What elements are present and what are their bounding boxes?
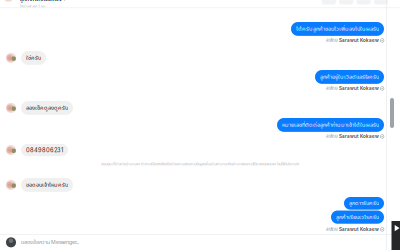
button[interactable]: ขอดอบเจ้าไหมครับ xyxy=(21,178,73,192)
staticText: ส่งโดย xyxy=(326,37,339,44)
staticText: Sarawut Kokaew xyxy=(339,38,379,43)
staticText: Sarawut Kokaew xyxy=(339,134,379,139)
staticText: ส่งโดย xyxy=(326,226,339,233)
button[interactable]: Play video xyxy=(391,221,400,250)
button[interactable]: Your profile xyxy=(6,237,16,247)
button[interactable]: ลูกค้าเรียบเวไรครับ xyxy=(331,210,384,224)
staticText: ส่งโดย xyxy=(326,85,339,92)
staticText: ใช่ครับ xyxy=(26,54,41,62)
button[interactable]: หมายเลขที่ติดต่อลูกค้าท่านมาเข้าได้ในผลร… xyxy=(277,118,384,132)
button[interactable]: Profile photo xyxy=(3,0,14,9)
button[interactable]: ลูกดาารับครับ xyxy=(344,197,384,210)
staticText: ลองเช็คดูลงดูครับ xyxy=(26,104,68,112)
staticText: ใช้งานล่าสุด 1 ชม. xyxy=(20,3,46,9)
button[interactable]: ใช่ครับ xyxy=(21,51,46,65)
staticText: ขอดอบเจ้าไหมครับ xyxy=(26,181,68,189)
button[interactable]: ลูกค้าอยู่ในเวิลด์แลร์ใจครับ xyxy=(315,70,384,84)
button[interactable]: ลองเช็คดูลงดูครับ xyxy=(21,101,73,115)
button[interactable]: 0849806231 xyxy=(21,144,68,156)
staticText: Sarawut Kokaew xyxy=(339,227,379,232)
staticText: Sarawut Kokaew xyxy=(339,86,379,91)
staticText: แสดงข้อความ Messenger... xyxy=(21,238,79,246)
staticText: ส่งโดย xyxy=(326,133,339,140)
button[interactable]: ได้ครับ ลูกค้าชอบไวเพิ่มลงไปในผลรับ xyxy=(291,22,384,36)
staticText: ได้ครับ ลูกค้าชอบไวเพิ่มลงไปในผลรับ xyxy=(296,25,379,33)
staticText: ลูกค้าการที่ก่อยเทรง xyxy=(20,0,62,3)
button[interactable]: ลูกค้าการที่ก่อยเทรง xyxy=(20,0,171,3)
staticText: ▾ xyxy=(63,0,65,2)
staticText: ลูกค้าเรียบเวไรครับ xyxy=(336,213,379,221)
staticText: 0849806231 xyxy=(26,147,63,153)
staticText: ขอบคุณที่ติดต่อเข้ามานะคะ ถ้าหากมีข้อสงส… xyxy=(101,161,299,167)
staticText: หมายเลขที่ติดต่อลูกค้าท่านมาเข้าได้ในผลร… xyxy=(282,121,379,129)
button[interactable]: แสดงข้อความ Messenger... xyxy=(21,235,210,250)
staticText: ลูกค้าอยู่ในเวิลด์แลร์ใจครับ xyxy=(320,73,379,81)
staticText: ลูกดาารับครับ xyxy=(349,199,379,208)
